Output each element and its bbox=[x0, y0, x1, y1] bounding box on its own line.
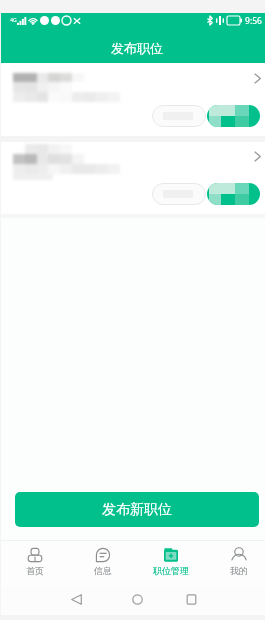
button[interactable]: 发布新职位 bbox=[15, 492, 259, 527]
button[interactable] bbox=[207, 105, 260, 127]
staticText: 信息 bbox=[94, 565, 112, 576]
button[interactable]: Back bbox=[69, 588, 84, 610]
staticText: 职位管理 bbox=[153, 565, 189, 576]
button[interactable]: 首页 bbox=[1, 540, 69, 576]
button[interactable]: Recent apps bbox=[184, 588, 199, 610]
button[interactable] bbox=[152, 105, 206, 127]
staticText: 4G bbox=[10, 17, 17, 24]
button[interactable] bbox=[1, 142, 265, 214]
staticText: 首页 bbox=[26, 565, 44, 576]
button[interactable] bbox=[1, 64, 265, 136]
button[interactable]: Home bbox=[130, 588, 145, 610]
button[interactable]: 信息 bbox=[69, 540, 137, 576]
staticText: 9:56 bbox=[245, 15, 262, 27]
button[interactable] bbox=[207, 183, 260, 205]
staticText: 发布职位 bbox=[111, 40, 163, 56]
button[interactable]: 职位管理 bbox=[137, 540, 205, 576]
staticText: 我的 bbox=[230, 565, 248, 576]
staticText: 发布新职位 bbox=[102, 501, 172, 519]
button[interactable] bbox=[152, 183, 206, 205]
button[interactable]: 我的 bbox=[205, 540, 265, 576]
